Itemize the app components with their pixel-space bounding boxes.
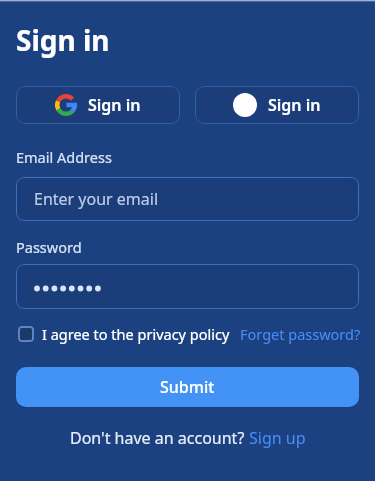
button[interactable]: [16, 264, 359, 309]
staticText: Enter your email: [34, 188, 159, 210]
staticText: I agree to the privacy policy: [42, 324, 230, 344]
button[interactable]: Sign in: [195, 86, 359, 124]
staticText: Sign in: [88, 94, 141, 116]
button[interactable]: I agree to the privacy policy: [18, 324, 230, 344]
staticText: Don't have an account?: [70, 427, 249, 449]
staticText: Password: [16, 237, 82, 257]
staticText: Sign in: [268, 94, 321, 116]
button[interactable]: Enter your email: [16, 177, 359, 221]
button[interactable]: Don't have an account?: [70, 427, 306, 449]
staticText: Email Address: [16, 147, 112, 167]
staticText: Sign in: [16, 21, 110, 59]
button[interactable]: Sign in: [16, 86, 180, 124]
staticText: Sign up: [249, 427, 306, 449]
staticText: Submit: [160, 376, 215, 398]
button[interactable]: Submit: [16, 367, 359, 407]
button[interactable]: Forget password?: [240, 324, 361, 344]
